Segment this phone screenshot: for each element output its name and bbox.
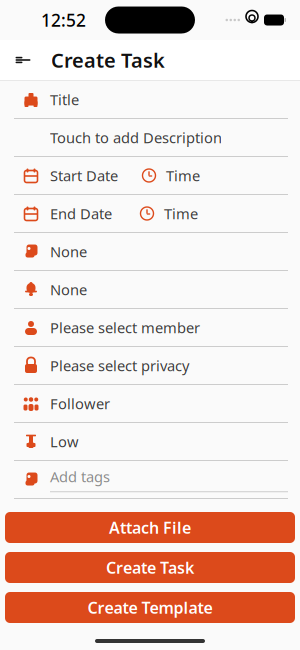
staticText: Time (164, 204, 198, 223)
button[interactable]: Start Date (0, 157, 300, 195)
button[interactable]: None (0, 233, 300, 271)
staticText: None (50, 280, 87, 299)
staticText: Create Template (87, 597, 212, 618)
button[interactable]: Create Template (0, 592, 300, 623)
staticText: End Date (50, 204, 112, 223)
staticText: 12:52 (41, 8, 86, 31)
button[interactable]: Touch to add Description (0, 119, 300, 157)
button[interactable]: Attach File (0, 512, 300, 543)
button[interactable]: Please select privacy (0, 347, 300, 385)
staticText: Start Date (50, 166, 118, 185)
staticText: Title (50, 90, 79, 109)
button[interactable]: Add tags (0, 461, 300, 499)
staticText: None (50, 242, 87, 261)
button[interactable]: End Date (0, 195, 300, 233)
staticText: Time (166, 166, 200, 185)
staticText: Please select privacy (50, 356, 189, 375)
staticText: Please select member (50, 318, 200, 337)
staticText: Touch to add Description (50, 128, 222, 147)
staticText: Low (50, 432, 79, 451)
button[interactable]: Follower (0, 385, 300, 423)
staticText: Attach File (109, 517, 191, 538)
staticText: Create Task (106, 557, 194, 578)
button[interactable]: Back (0, 43, 40, 77)
button[interactable]: Create Task (0, 552, 300, 583)
staticText: Follower (50, 394, 110, 413)
button[interactable]: Title (0, 81, 300, 119)
staticText: Create Task (51, 47, 165, 73)
button[interactable]: None (0, 271, 300, 309)
staticText: Add tags (50, 467, 110, 486)
button[interactable]: Low (0, 423, 300, 461)
button[interactable]: Please select member (0, 309, 300, 347)
